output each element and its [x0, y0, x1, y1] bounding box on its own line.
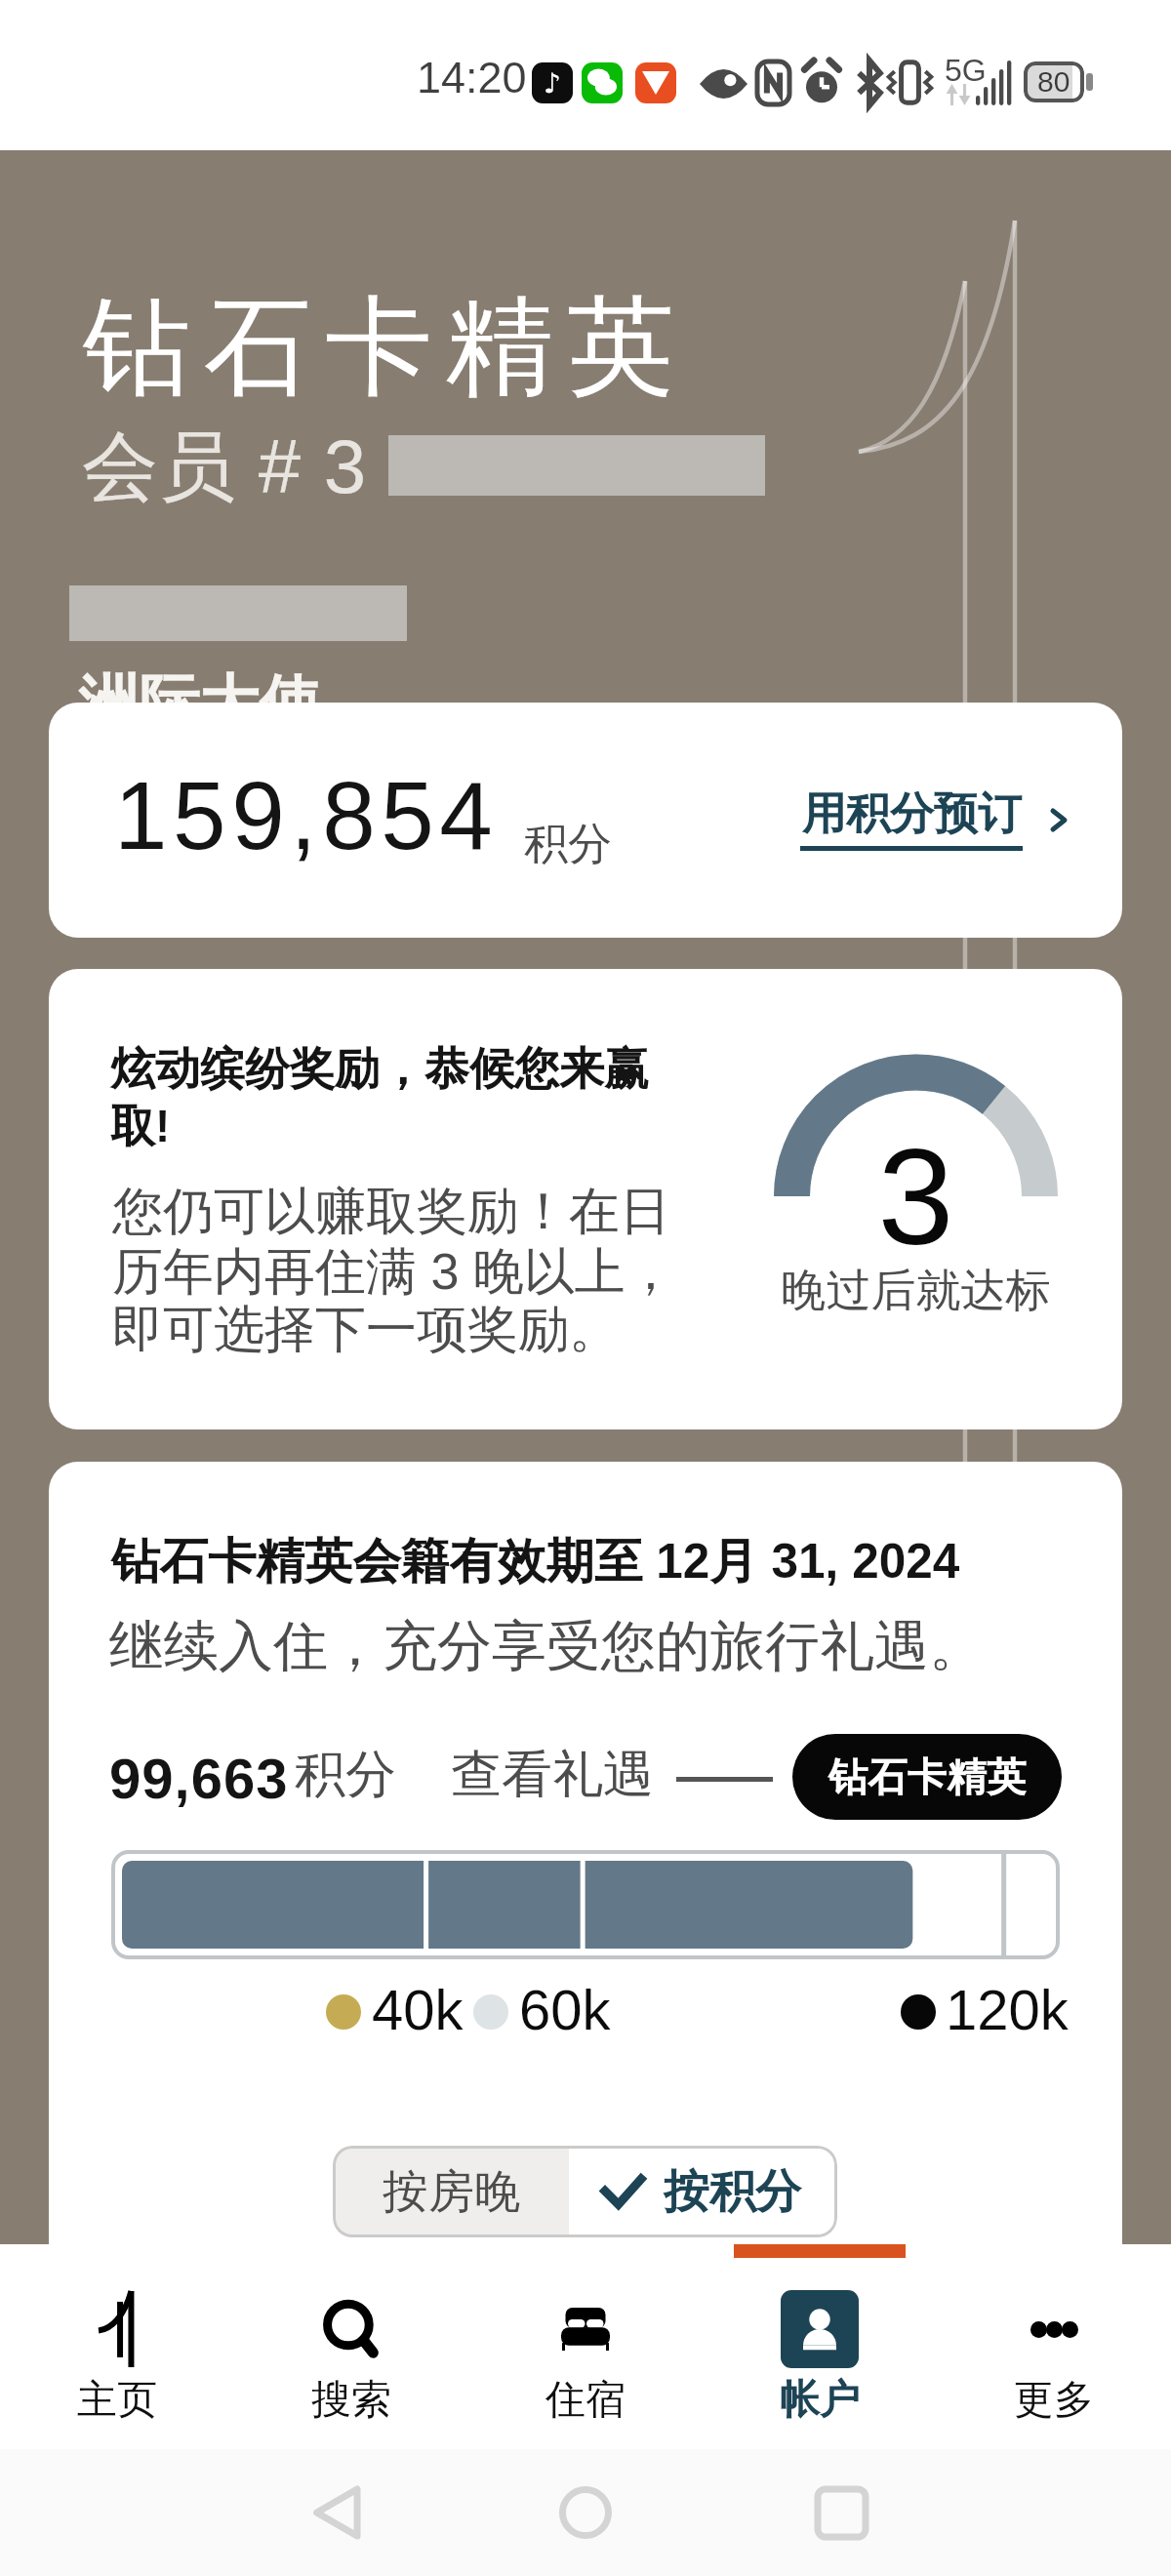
- button[interactable]: Recents: [794, 2466, 888, 2559]
- staticText: 按积分: [664, 2163, 801, 2221]
- button[interactable]: 钻石卡精英会籍有效期至 12月 31, 2024: [49, 1462, 1122, 2340]
- button[interactable]: 主页: [0, 2244, 234, 2449]
- staticText: 主页: [77, 2375, 157, 2426]
- staticText: 会员 # 3: [82, 420, 368, 515]
- staticText: 40k: [372, 1978, 464, 2041]
- staticText: 按房晚: [383, 2163, 520, 2221]
- staticText: 积分: [524, 817, 612, 872]
- staticText: 99,663: [109, 1747, 289, 1810]
- button[interactable]: 更多: [937, 2244, 1171, 2449]
- button[interactable]: 按积分: [569, 2146, 837, 2237]
- staticText: 炫动缤纷奖励，恭候您来赢取!: [110, 1041, 666, 1155]
- staticText: 晚过后就达标: [774, 1263, 1058, 1319]
- button[interactable]: 159,854: [49, 703, 1122, 938]
- button[interactable]: 帐户: [703, 2244, 937, 2449]
- staticText: 5G: [945, 53, 987, 88]
- staticText: 用积分预订: [802, 786, 1022, 842]
- staticText: 洲际大使: [78, 665, 320, 742]
- staticText: 钻石卡精英: [76, 280, 681, 416]
- staticText: 搜索: [311, 2375, 391, 2426]
- button[interactable]: 钻石卡精英: [792, 1734, 1062, 1820]
- staticText: 60k: [519, 1978, 611, 2041]
- button[interactable]: 住宿: [468, 2244, 703, 2449]
- staticText: 钻石卡精英: [828, 1752, 1027, 1801]
- staticText: 帐户: [780, 2375, 860, 2426]
- button[interactable]: 搜索: [234, 2244, 468, 2449]
- button[interactable]: 查看礼遇: [451, 1743, 654, 1807]
- button[interactable]: 按房晚: [333, 2146, 569, 2237]
- staticText: 80: [1037, 65, 1070, 99]
- staticText: ♪: [544, 67, 561, 100]
- staticText: 159,854: [114, 762, 499, 868]
- staticText: 3: [774, 1120, 1058, 1272]
- staticText: 更多: [1014, 2375, 1094, 2426]
- staticText: 您仍可以赚取奖励！在日历年内再住满 3 晚以上，即可选择下一项奖励。: [112, 1180, 690, 1361]
- staticText: 继续入住，充分享受您的旅行礼遇。: [109, 1612, 984, 1681]
- staticText: 住宿: [545, 2375, 626, 2426]
- button[interactable]: Back: [283, 2466, 377, 2559]
- staticText: 钻石卡精英会籍有效期至 12月 31, 2024: [111, 1531, 960, 1591]
- staticText: 14:20: [417, 53, 527, 101]
- button[interactable]: 用积分预订: [792, 781, 1122, 868]
- button[interactable]: Home: [539, 2466, 632, 2559]
- staticText: 积分: [295, 1743, 396, 1807]
- staticText: 120k: [946, 1978, 1069, 2041]
- button[interactable]: 炫动缤纷奖励，恭候您来赢取!: [49, 969, 1122, 1429]
